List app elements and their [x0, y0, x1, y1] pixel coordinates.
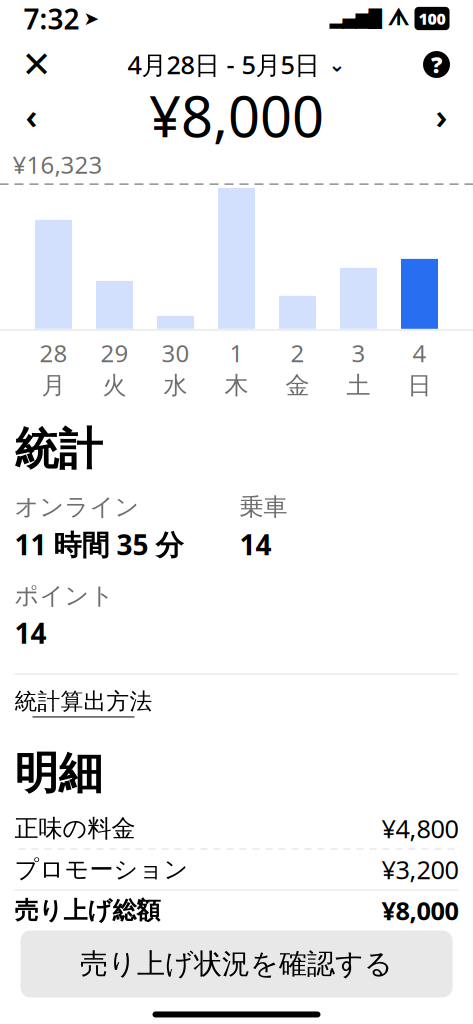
staticText: 4 — [412, 337, 426, 369]
staticText: 売り上げ総額 — [14, 896, 160, 925]
staticText: オンライン — [14, 492, 139, 522]
staticText: 明細 — [14, 746, 102, 800]
staticText: ポイント — [14, 581, 114, 610]
staticText: プロモーション — [14, 855, 188, 884]
staticText: 29 — [100, 337, 128, 369]
staticText: ? — [431, 49, 442, 80]
staticText: 100 — [418, 8, 445, 29]
button[interactable]: Help — [413, 41, 459, 87]
staticText: 土 — [346, 371, 370, 400]
staticText: ✕ — [21, 44, 51, 85]
staticText: ¥8,000 — [381, 894, 458, 927]
staticText: 7:32 — [23, 0, 79, 37]
staticText: ¥4,800 — [381, 812, 458, 845]
staticText: 14 — [14, 614, 46, 652]
staticText: 統計 — [14, 422, 102, 476]
button[interactable]: Close — [13, 41, 59, 87]
staticText: 3 — [351, 337, 365, 369]
staticText: ⌄ — [328, 53, 345, 76]
staticText: 11 時間 35 分 — [14, 526, 183, 563]
staticText: ᗑ — [387, 7, 408, 30]
staticText: › — [435, 92, 447, 138]
staticText: 月 — [41, 371, 65, 400]
staticText: 売り上げ状況を確認する — [80, 947, 393, 981]
staticText: 統計算出方法 — [14, 688, 152, 715]
staticText: ➤ — [83, 8, 99, 29]
staticText: 日 — [407, 371, 431, 400]
staticText: 正味の料金 — [14, 814, 135, 843]
staticText: 金 — [285, 371, 309, 400]
staticText: ▂▄▆█ — [329, 9, 381, 28]
staticText: 木 — [224, 371, 248, 400]
staticText: ‹ — [25, 92, 37, 138]
staticText: 2 — [290, 337, 304, 369]
button[interactable]: 4月28日 - 5月5日 — [119, 41, 353, 87]
staticText: 30 — [161, 337, 189, 369]
button[interactable]: Next week — [419, 93, 463, 137]
staticText: ¥16,323 — [12, 148, 102, 180]
staticText: 水 — [163, 371, 187, 400]
staticText: 4月28日 - 5月5日 — [127, 48, 319, 81]
staticText: 14 — [239, 526, 271, 563]
staticText: ¥8,000 — [149, 78, 324, 153]
staticText: 1 — [229, 337, 243, 369]
staticText: 28 — [39, 337, 67, 369]
staticText: 乗車 — [239, 492, 287, 522]
staticText: 火 — [102, 371, 126, 400]
button[interactable]: Previous week — [9, 93, 53, 137]
button[interactable]: 売り上げ状況を確認する — [20, 930, 452, 997]
button[interactable]: 統計算出方法 — [14, 675, 458, 730]
staticText: ¥3,200 — [381, 853, 458, 886]
